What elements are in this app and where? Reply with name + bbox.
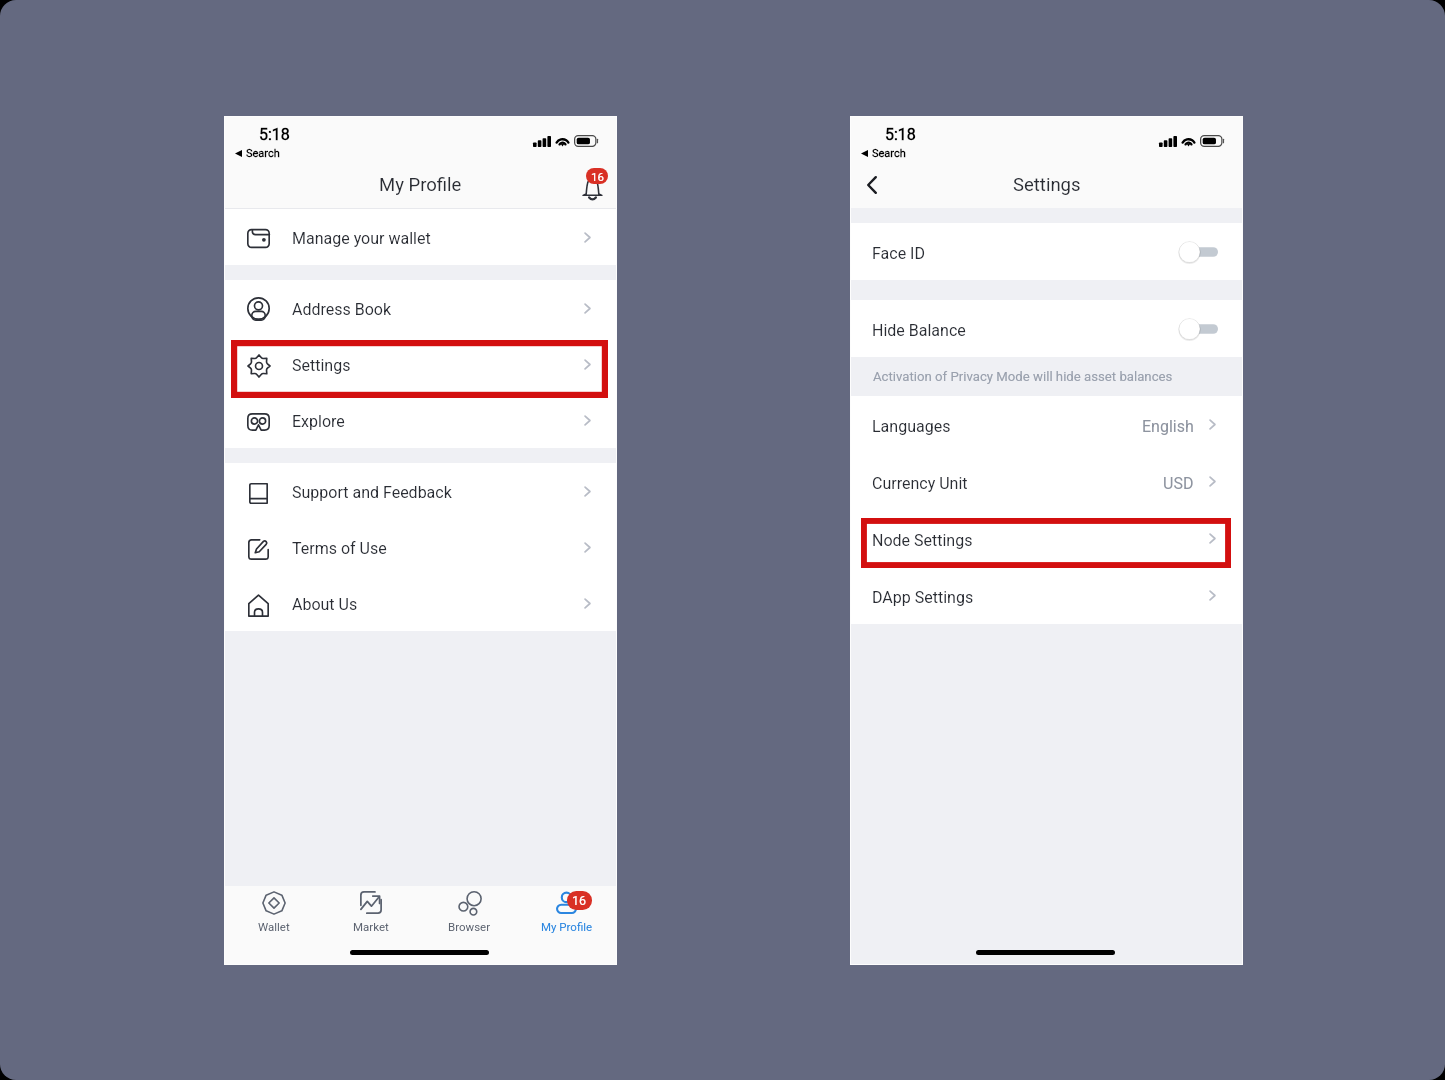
staticText: Hide Balance xyxy=(872,321,966,340)
staticText: Market xyxy=(353,920,389,933)
staticText: Node Settings xyxy=(872,531,973,550)
staticText: Explore xyxy=(292,412,345,431)
staticText: Search xyxy=(246,147,280,160)
staticText: Wallet xyxy=(258,920,290,933)
button[interactable]: Notifications xyxy=(571,158,616,205)
button[interactable]: Manage your wallet xyxy=(225,209,616,265)
staticText: Languages xyxy=(872,417,951,436)
staticText: 5:18 xyxy=(885,125,916,144)
button[interactable]: Node Settings xyxy=(851,510,1242,567)
button[interactable]: Address Book xyxy=(225,280,616,336)
staticText: Activation of Privacy Mode will hide ass… xyxy=(873,369,1173,384)
staticText: About Us xyxy=(292,595,358,614)
button[interactable]: Support and Feedback xyxy=(225,463,616,519)
button[interactable]: Browser xyxy=(420,886,518,964)
staticText: Address Book xyxy=(292,300,392,319)
staticText: Terms of Use xyxy=(292,539,387,558)
staticText: Face ID xyxy=(872,244,925,263)
staticText: Support and Feedback xyxy=(292,483,452,502)
staticText: Search xyxy=(872,147,906,160)
button[interactable]: Currency Unit xyxy=(851,453,1242,510)
staticText: Browser xyxy=(448,920,491,933)
button[interactable]: DApp Settings xyxy=(851,567,1242,624)
button[interactable]: Settings xyxy=(225,336,616,392)
staticText: English xyxy=(1142,417,1194,436)
button[interactable]: Market xyxy=(322,886,420,964)
staticText: My Profile xyxy=(541,920,593,933)
staticText: 16 xyxy=(591,170,604,183)
button[interactable]: About Us xyxy=(225,575,616,631)
button[interactable]: Hide Balance xyxy=(851,300,1242,357)
button[interactable]: Explore xyxy=(225,392,616,448)
staticText: My Profile xyxy=(379,174,462,196)
staticText: DApp Settings xyxy=(872,588,974,607)
staticText: USD xyxy=(1163,474,1194,493)
staticText: Settings xyxy=(292,356,351,375)
staticText: Settings xyxy=(1013,174,1081,196)
button[interactable]: Back xyxy=(857,164,899,206)
button[interactable]: 16 xyxy=(518,886,616,964)
staticText: Currency Unit xyxy=(872,474,968,493)
staticText: 5:18 xyxy=(259,125,290,144)
button[interactable]: Terms of Use xyxy=(225,519,616,575)
button[interactable]: Languages xyxy=(851,396,1242,453)
staticText: 16 xyxy=(572,893,587,908)
staticText: Manage your wallet xyxy=(292,229,431,248)
button[interactable]: Wallet xyxy=(225,886,322,964)
button[interactable]: Face ID xyxy=(851,223,1242,280)
